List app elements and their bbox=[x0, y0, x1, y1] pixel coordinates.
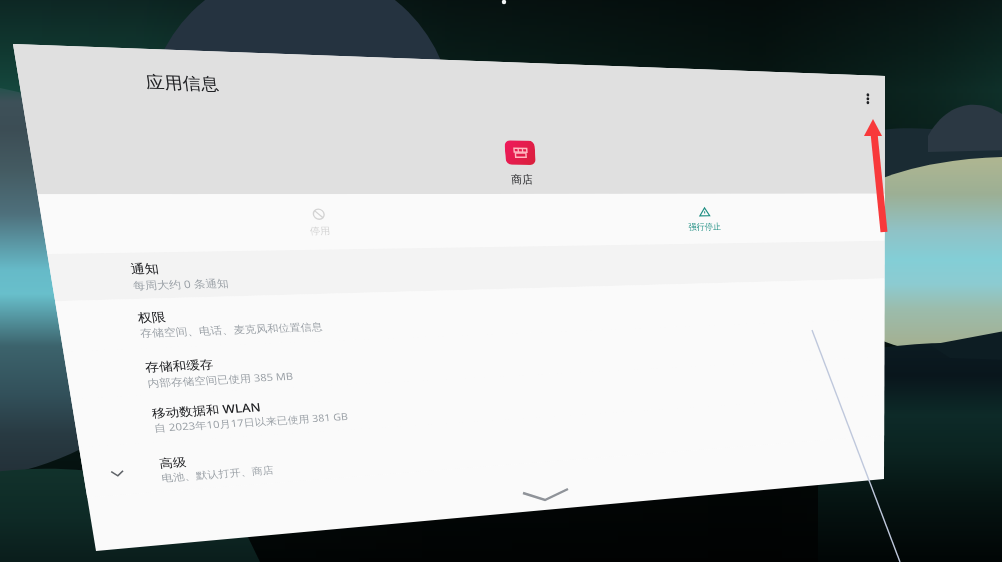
staticText: 停用 bbox=[268, 190, 290, 204]
other: Expand bbox=[24, 461, 44, 481]
staticText: 应用信息 bbox=[119, 24, 191, 47]
staticText: 自 2023年10月17日以来已使用 381 GB bbox=[78, 412, 288, 428]
button[interactable]: 存储和缓存 bbox=[0, 327, 1002, 381]
staticText: 强行停止 bbox=[723, 190, 767, 204]
staticText: 商店 bbox=[502, 129, 528, 145]
staticText: 电池、默认打开、商店 bbox=[78, 473, 198, 488]
button[interactable]: 通知 bbox=[0, 219, 1002, 271]
button[interactable]: 强行停止 bbox=[665, 155, 825, 219]
staticText: 移动数据和 WLAN bbox=[78, 393, 193, 412]
button[interactable]: 权限 bbox=[0, 271, 1002, 327]
button[interactable]: 移动数据和 WLAN bbox=[0, 381, 1002, 437]
staticText: 每周大约 0 条通知 bbox=[78, 247, 176, 263]
button[interactable]: Expand bbox=[0, 437, 1002, 497]
staticText: 存储空间、电话、麦克风和位置信息 bbox=[78, 302, 270, 317]
button[interactable]: 停用 bbox=[199, 155, 359, 219]
staticText: 内部存储空间已使用 385 MB bbox=[78, 359, 232, 375]
staticText: 高级 bbox=[78, 455, 106, 473]
